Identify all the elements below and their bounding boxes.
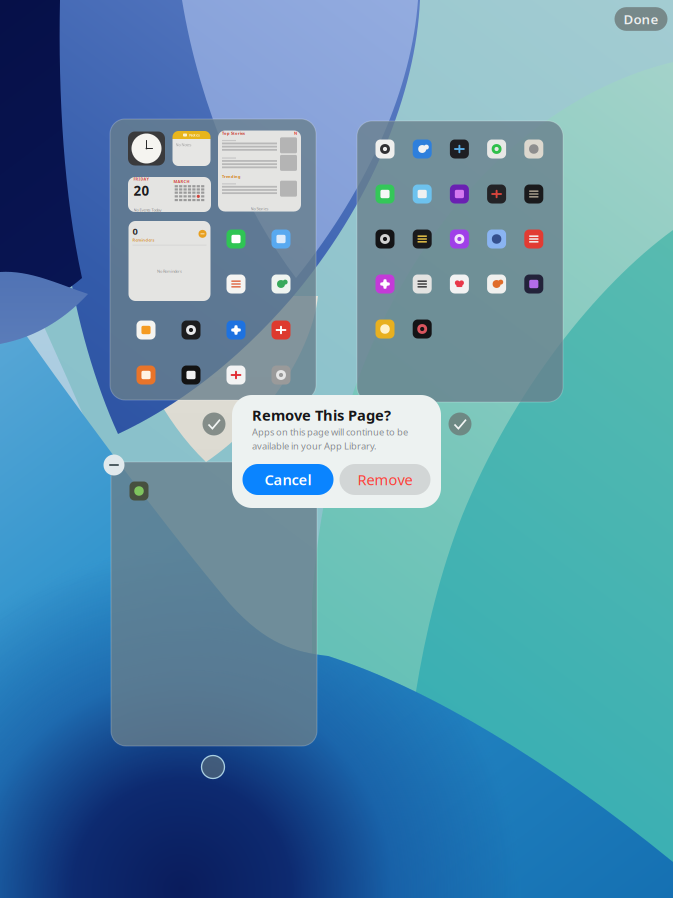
staticText: No Events Today [133,207,161,213]
staticText: Cancel [264,470,311,489]
staticText: Remove [357,470,412,489]
staticText: No Stories [250,206,268,211]
button[interactable]: Cancel [242,464,333,495]
button[interactable]: Page shown [202,412,225,435]
staticText: Trending [222,174,241,179]
button[interactable]: Page shown [448,412,471,435]
staticText: MARCH [173,179,189,184]
staticText: 20 [133,182,149,199]
staticText: available in your App Library. [252,440,377,452]
staticText: FRIDAY [133,176,149,182]
staticText: No Notes [175,142,191,147]
button[interactable]: Page hidden [201,755,224,778]
staticText: Remove This Page? [252,405,391,425]
staticText: Apps on this page will continue to be [252,426,408,438]
button[interactable]: Remove page [103,454,124,475]
button[interactable]: Remove [339,464,430,495]
staticText: Top Stories [222,130,245,136]
staticText: 0 [132,225,137,237]
staticText: No Reminders [157,269,182,274]
staticText: Notes [189,132,200,138]
button[interactable]: Done [614,7,667,31]
staticText: N [294,130,297,136]
staticText: Done [623,10,658,28]
staticText: Reminders [132,237,154,243]
